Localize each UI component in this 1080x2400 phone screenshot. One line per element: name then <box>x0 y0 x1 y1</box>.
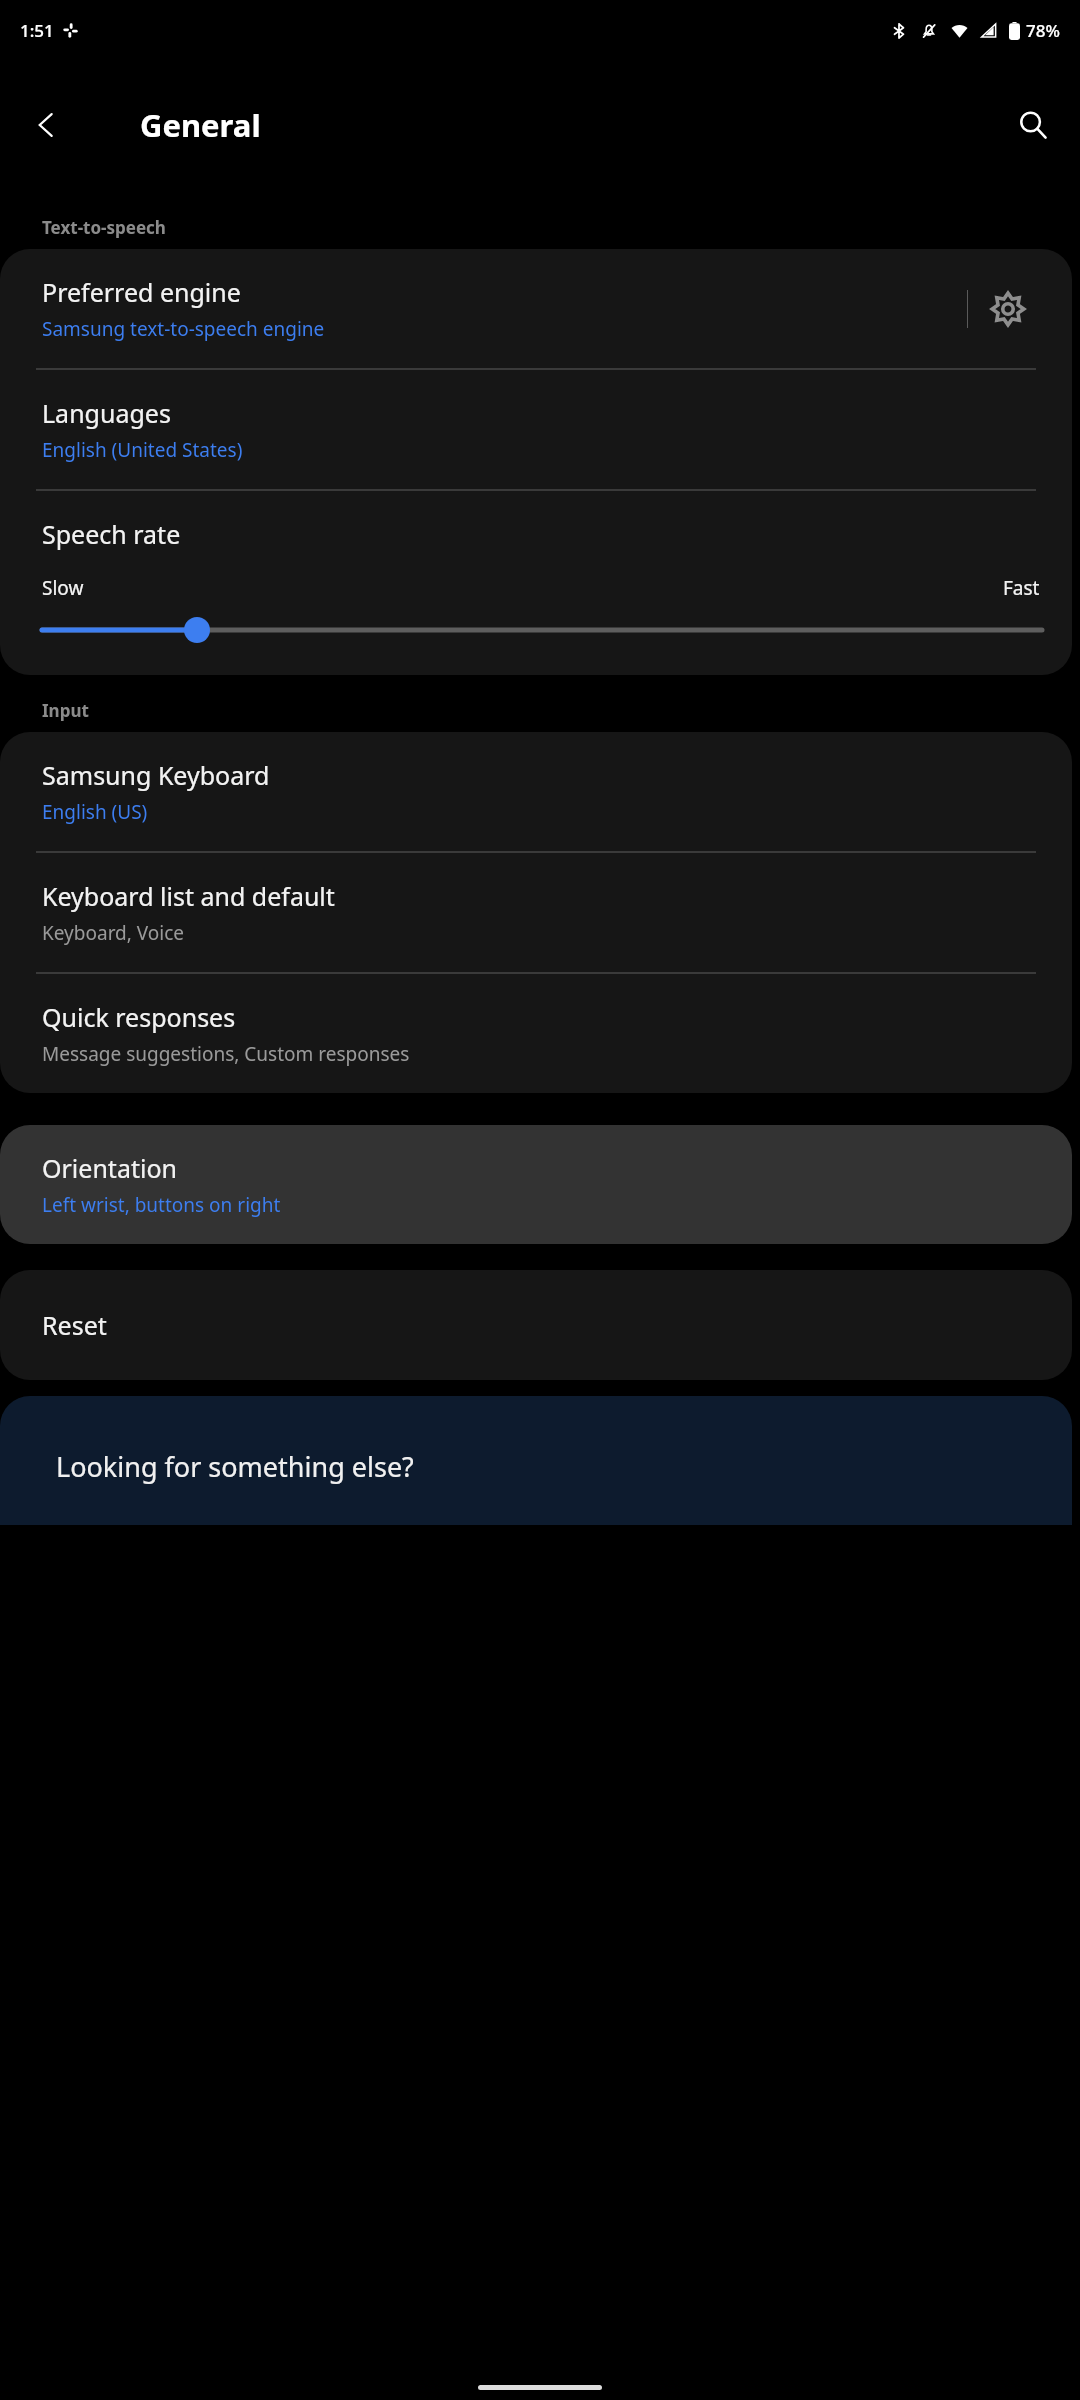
button[interactable]: Keyboard list and default <box>0 853 1072 972</box>
staticText: 1:51 <box>20 19 54 42</box>
button[interactable]: Engine settings <box>968 277 1048 341</box>
staticText: Languages <box>42 396 171 430</box>
button[interactable]: Quick responses <box>0 974 1072 1093</box>
staticText: Quick responses <box>42 1000 236 1034</box>
staticText: English (United States) <box>42 437 243 463</box>
button[interactable]: Languages <box>0 370 1072 489</box>
staticText: Reset <box>42 1308 107 1342</box>
button[interactable]: Search <box>1006 98 1060 152</box>
staticText: Speech rate <box>42 517 181 551</box>
button[interactable]: Orientation <box>0 1125 1072 1244</box>
staticText: Text-to-speech <box>42 216 166 239</box>
staticText: Left wrist, buttons on right <box>42 1192 281 1218</box>
button[interactable]: Reset <box>0 1270 1072 1380</box>
button[interactable]: Back <box>22 102 72 148</box>
staticText: Input <box>42 699 89 722</box>
staticText: General <box>140 104 261 146</box>
button[interactable]: Speech rate <box>0 491 1072 675</box>
staticText: Message suggestions, Custom responses <box>42 1041 410 1067</box>
staticText: Samsung text-to-speech engine <box>42 316 325 342</box>
staticText: Slow <box>42 575 84 601</box>
staticText: Preferred engine <box>42 275 241 309</box>
button[interactable]: Preferred engine <box>0 249 1072 368</box>
staticText: Fast <box>1003 575 1040 601</box>
button[interactable]: Looking for something else? <box>0 1396 1072 1525</box>
button[interactable]: Samsung Keyboard <box>0 732 1072 851</box>
staticText: 78% <box>1026 19 1060 42</box>
staticText: Keyboard, Voice <box>42 920 185 946</box>
staticText: Orientation <box>42 1151 177 1185</box>
staticText: Samsung Keyboard <box>42 758 270 792</box>
staticText: English (US) <box>42 799 148 825</box>
staticText: Keyboard list and default <box>42 879 335 913</box>
staticText: Looking for something else? <box>56 1448 414 1485</box>
